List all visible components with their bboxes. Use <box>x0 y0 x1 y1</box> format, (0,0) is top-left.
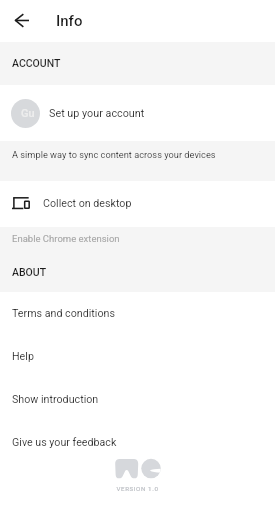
staticText: Show introduction <box>12 393 99 406</box>
staticText: Info <box>56 12 83 30</box>
staticText: Enable Chrome extension <box>12 233 120 244</box>
staticText: A simple way to sync content across your… <box>12 149 216 160</box>
staticText: Terms and conditions <box>12 307 115 320</box>
button[interactable]: Show introduction <box>0 378 275 421</box>
button[interactable]: Help <box>0 335 275 378</box>
button[interactable]: Gu <box>0 85 275 141</box>
button[interactable]: Back <box>0 0 42 42</box>
staticText: Help <box>12 350 34 363</box>
staticText: Collect on desktop <box>43 197 132 210</box>
button[interactable]: Collect on desktop <box>0 181 275 227</box>
staticText: Gu <box>21 107 35 120</box>
staticText: ACCOUNT <box>12 57 61 69</box>
staticText: Give us your feedback <box>12 436 117 449</box>
button[interactable]: Terms and conditions <box>0 292 275 335</box>
button[interactable]: Enable Chrome extension <box>0 227 275 261</box>
staticText: VERSION 1.0 <box>116 485 159 492</box>
button[interactable]: Give us your feedback <box>0 421 275 464</box>
staticText: ABOUT <box>12 266 47 278</box>
staticText: Set up your account <box>49 107 145 120</box>
